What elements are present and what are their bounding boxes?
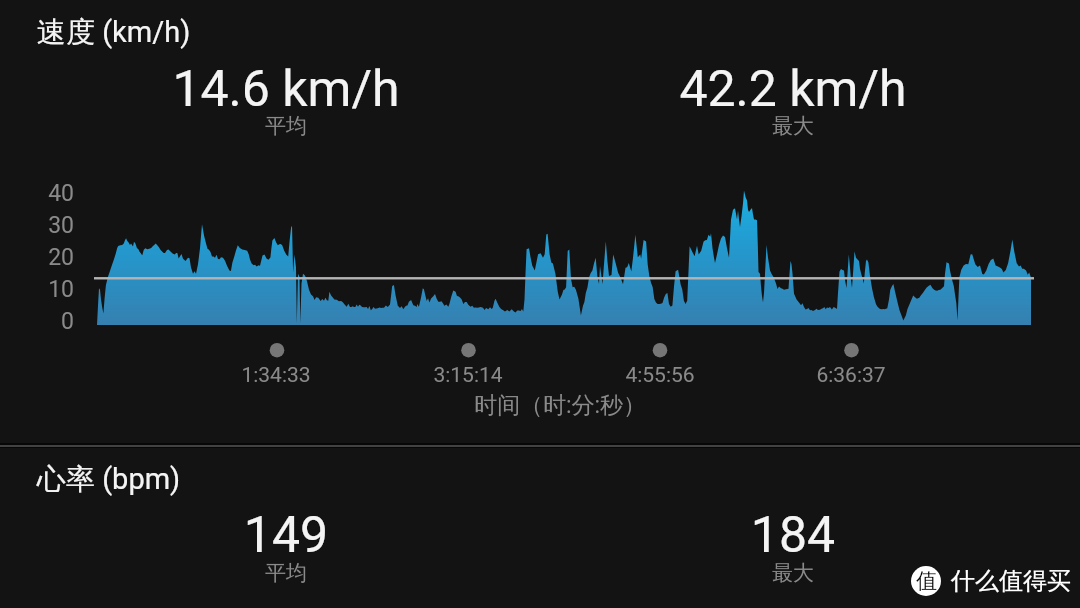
- staticText: 184: [543, 506, 1043, 565]
- staticText: 1:34:33: [176, 363, 376, 388]
- staticText: 平均: [36, 560, 536, 586]
- staticText: 什么值得买: [951, 566, 1071, 596]
- staticText: 42.2 km/h: [543, 60, 1043, 119]
- staticText: 14.6 km/h: [36, 60, 536, 119]
- staticText: 0: [0, 308, 74, 335]
- staticText: 6:36:37: [751, 363, 951, 388]
- button[interactable]: 心率图表 Heart rate chart: [0, 448, 1080, 608]
- staticText: 4:55:56: [560, 363, 760, 388]
- staticText: 最大: [543, 560, 1043, 586]
- staticText: 10: [0, 276, 74, 303]
- button[interactable]: 速度图表 Speed chart: [0, 0, 1080, 443]
- staticText: 3:15:14: [368, 363, 568, 388]
- staticText: 149: [36, 506, 536, 565]
- staticText: 40: [0, 180, 74, 207]
- staticText: 值: [916, 568, 937, 594]
- staticText: 最大: [543, 113, 1043, 139]
- staticText: 30: [0, 212, 74, 239]
- staticText: 时间（时:分:秒）: [360, 391, 760, 420]
- staticText: 速度 (km/h): [37, 14, 191, 51]
- staticText: 20: [0, 244, 74, 271]
- staticText: 心率 (bpm): [37, 461, 181, 498]
- button[interactable]: 什么值得买 logo: [911, 566, 1071, 596]
- staticText: 平均: [36, 113, 536, 139]
